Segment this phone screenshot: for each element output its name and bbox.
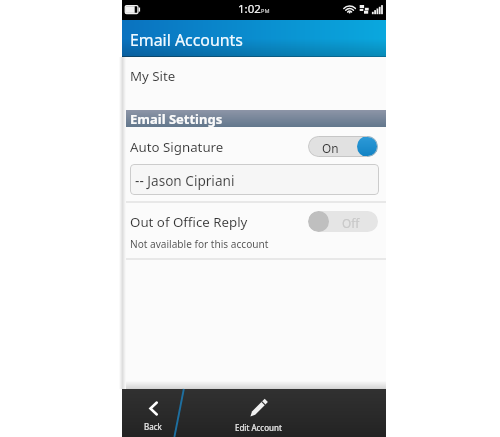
button[interactable]: Out of Office Reply [122,203,386,258]
button[interactable]: Auto Signature toggle, on [308,136,378,157]
button[interactable]: My Site [122,57,386,109]
button[interactable]: Back [122,389,183,437]
button[interactable]: -- Jason Cipriani [130,164,379,195]
button[interactable]: Edit Account [184,389,334,437]
staticText: Edit Account [235,422,282,433]
staticText: Auto Signature [130,138,224,156]
staticText: Back [144,421,162,432]
staticText: My Site [130,67,176,85]
staticText: -- Jason Cipriani [135,171,235,190]
staticText: Email Settings [130,110,223,128]
button[interactable]: Auto Signature [122,127,386,163]
staticText: Email Accounts [130,29,243,51]
button[interactable]: Out of Office Reply toggle, off [308,211,378,232]
staticText: PM [261,7,270,15]
staticText: Not available for this account [130,237,269,251]
staticText: 1:02 [238,1,261,17]
staticText: Off [342,215,360,231]
staticText: On [322,140,339,156]
staticText: Out of Office Reply [130,213,248,231]
